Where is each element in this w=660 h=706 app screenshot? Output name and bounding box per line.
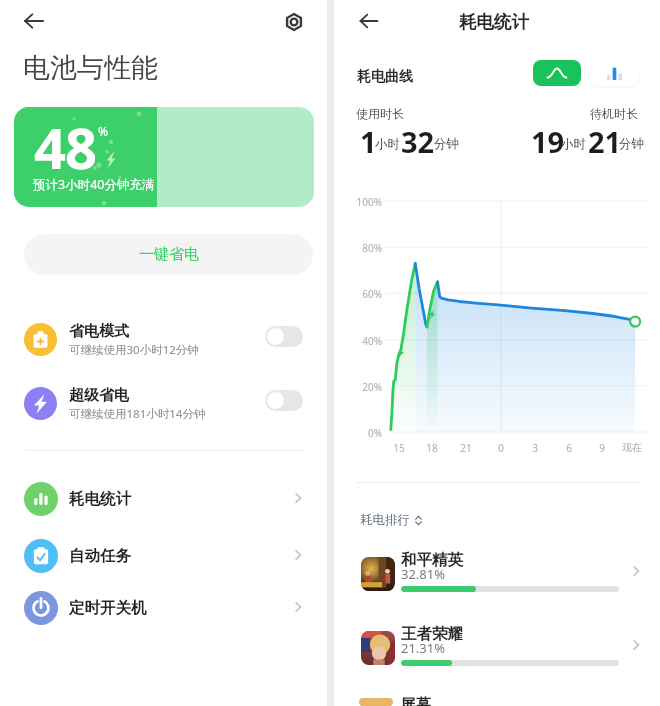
button[interactable]: 耗电排行 (360, 512, 424, 528)
staticText: 19 (531, 122, 565, 161)
staticText: 小时 (561, 136, 586, 152)
button[interactable]: 超级省电 (0, 379, 327, 431)
staticText: 100% (352, 195, 382, 209)
staticText: 和平精英 (401, 550, 463, 570)
button[interactable]: 定时开关机 (0, 583, 327, 633)
staticText: 18 (418, 441, 446, 455)
staticText: 21 (588, 122, 622, 161)
staticText: 0 (487, 441, 515, 455)
button[interactable]: Back (351, 4, 385, 38)
button[interactable]: 一键省电 (24, 234, 313, 275)
staticText: 超级省电 (69, 386, 129, 405)
staticText: 32.81% (401, 565, 446, 583)
staticText: 待机时长 (312, 106, 638, 121)
staticText: 小时 (375, 136, 400, 152)
staticText: 0% (352, 426, 382, 440)
staticText: 定时开关机 (69, 598, 147, 618)
staticText: 耗电曲线 (357, 68, 413, 86)
staticText: % (98, 123, 108, 139)
staticText: 现在 (618, 441, 646, 454)
staticText: 使用时长 (356, 106, 404, 121)
staticText: 40% (352, 334, 382, 348)
staticText: 王者荣耀 (401, 624, 463, 644)
button[interactable]: 耗电统计 (0, 474, 327, 524)
button[interactable]: 省电模式 (0, 315, 327, 367)
staticText: 80% (352, 241, 382, 255)
staticText: 20% (352, 380, 382, 394)
button[interactable]: 超级省电 (265, 390, 303, 411)
button[interactable]: 自动任务 (0, 531, 327, 581)
button[interactable]: Bar chart (590, 60, 639, 86)
staticText: 一键省电 (139, 245, 199, 264)
staticText: 48 (34, 109, 97, 185)
button[interactable]: Back (15, 3, 51, 39)
staticText: 耗电统计 (69, 489, 131, 509)
staticText: 分钟 (619, 136, 644, 152)
staticText: 60% (352, 287, 382, 301)
staticText: 自动任务 (69, 546, 131, 566)
staticText: 可继续使用30小时12分钟 (69, 342, 199, 358)
staticText: 耗电统计 (331, 11, 657, 33)
staticText: 省电模式 (69, 322, 129, 341)
staticText: 15 (385, 441, 413, 455)
staticText: 32 (401, 122, 435, 161)
button[interactable]: 省电模式 (265, 326, 303, 347)
staticText: 电池与性能 (23, 51, 158, 85)
staticText: 预计3小时40分钟充满 (33, 176, 155, 193)
staticText: 1 (360, 122, 377, 161)
button[interactable]: 48 (14, 107, 314, 207)
staticText: 21.31% (401, 639, 446, 657)
button[interactable]: 和平精英 (334, 552, 660, 604)
button[interactable]: 王者荣耀 (334, 626, 660, 678)
button[interactable]: Settings (278, 6, 310, 38)
staticText: 6 (555, 441, 583, 455)
staticText: 21 (452, 441, 480, 455)
staticText: 耗电排行 (360, 512, 410, 528)
staticText: 屏幕 (400, 695, 431, 706)
staticText: 可继续使用181小时14分钟 (69, 406, 206, 422)
staticText: 分钟 (434, 136, 459, 152)
staticText: 3 (521, 441, 549, 455)
button[interactable]: Curve chart (533, 60, 581, 86)
staticText: 9 (588, 441, 616, 455)
